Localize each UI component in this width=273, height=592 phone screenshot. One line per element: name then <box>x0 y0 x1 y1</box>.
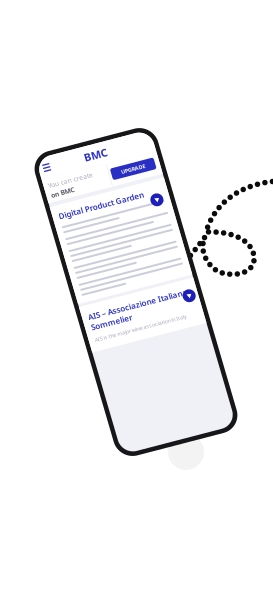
staticText: Digital Product Garden <box>40 216 128 227</box>
button[interactable]: Play <box>133 224 146 237</box>
button[interactable]: Play <box>137 325 150 338</box>
staticText: AIS – Associazione Italiana Sommelier <box>40 322 142 343</box>
staticText: UPGRADE <box>113 191 138 198</box>
staticText: on BMC <box>39 195 63 204</box>
button[interactable]: UPGRADE <box>103 188 148 200</box>
staticText: BMC <box>81 164 105 178</box>
staticText: You can create <box>39 185 85 194</box>
button[interactable]: Menu <box>39 164 53 178</box>
staticText: AIS is the major wine association in Ita… <box>40 347 135 354</box>
